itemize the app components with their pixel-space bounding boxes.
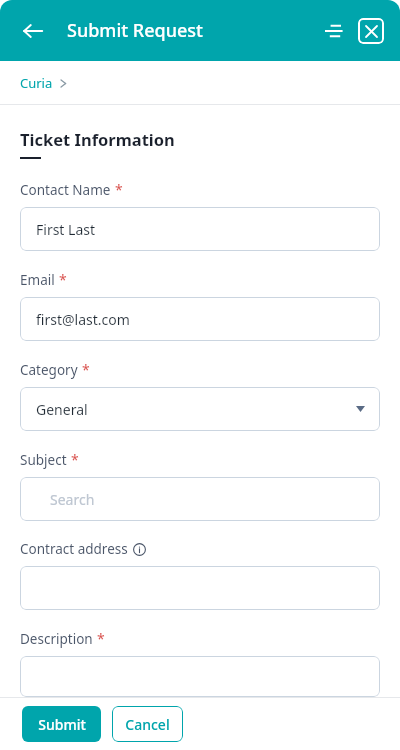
staticText: Contact Name [20, 181, 111, 199]
staticText: Ticket Information [20, 128, 175, 150]
staticText: Email [20, 271, 55, 289]
button[interactable]: Close [358, 18, 384, 44]
button[interactable]: Filter [318, 14, 352, 48]
button[interactable]: first@last.com [20, 297, 380, 341]
staticText: Curia [20, 74, 53, 92]
staticText: Contract address [20, 540, 128, 558]
staticText: Cancel [125, 715, 170, 734]
staticText: * [82, 360, 90, 379]
staticText: * [97, 629, 105, 648]
staticText: * [71, 450, 79, 469]
button[interactable]: General [20, 387, 380, 431]
staticText: First Last [36, 220, 96, 239]
staticText: * [115, 180, 123, 199]
staticText: Submit [38, 715, 86, 734]
staticText: Submit Request [67, 18, 203, 43]
staticText: General [36, 400, 88, 419]
staticText: Search [50, 490, 95, 509]
button[interactable]: First Last [20, 207, 380, 251]
button[interactable]: Submit [22, 706, 101, 742]
button[interactable]: Curia [20, 74, 67, 92]
button[interactable]: Back [14, 12, 52, 50]
button[interactable] [20, 566, 380, 610]
button[interactable] [20, 656, 380, 697]
button[interactable]: Cancel [112, 706, 183, 742]
button[interactable]: More information [133, 543, 146, 556]
staticText: * [59, 270, 67, 289]
staticText: Description [20, 630, 93, 648]
staticText: Subject [20, 451, 67, 469]
staticText: Category [20, 361, 78, 379]
button[interactable]: Search [20, 477, 380, 521]
staticText: first@last.com [36, 310, 130, 329]
